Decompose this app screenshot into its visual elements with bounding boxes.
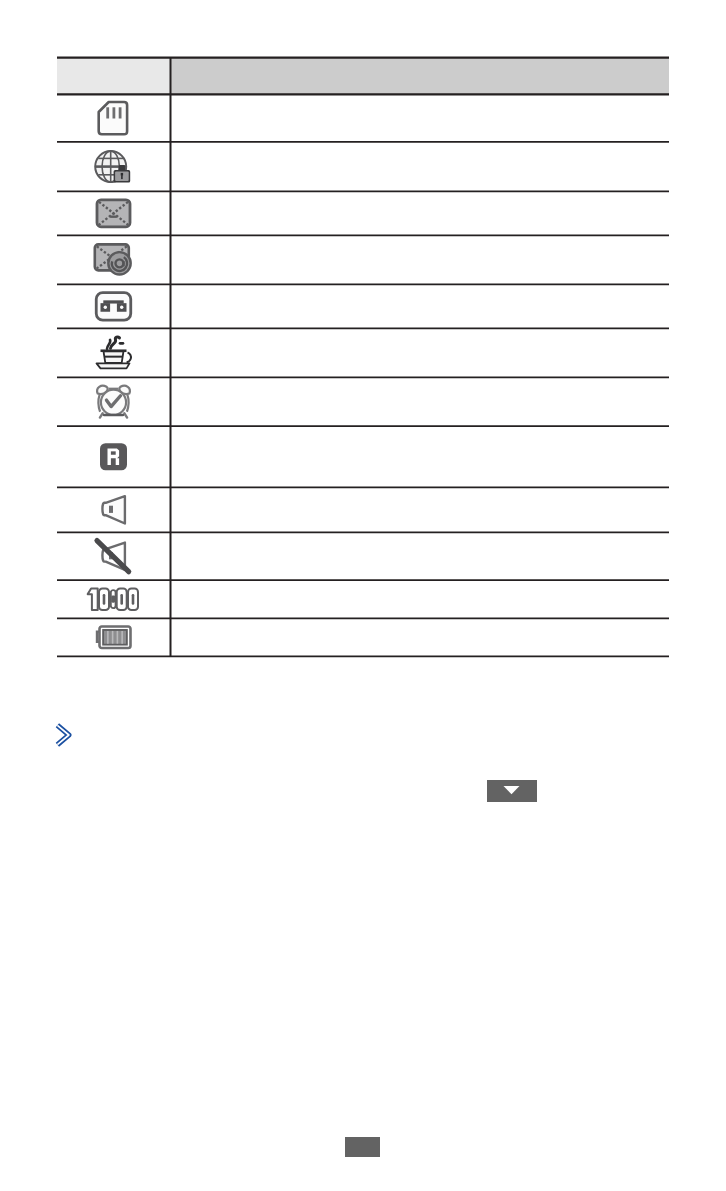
button[interactable]: Alarm activated bbox=[57, 377, 669, 426]
button[interactable]: Call alert set to vibration bbox=[57, 487, 669, 532]
button[interactable]: Java application running bbox=[57, 328, 669, 377]
button[interactable]: New voice mail bbox=[57, 284, 669, 328]
button[interactable]: Roaming (outside of home service area) bbox=[57, 426, 669, 487]
button[interactable]: Current time bbox=[57, 580, 669, 618]
button[interactable]: New text message bbox=[57, 191, 669, 235]
button[interactable]: Silent mode activated bbox=[57, 532, 669, 580]
button[interactable]: SIM card inserted bbox=[57, 94, 669, 141]
button[interactable]: Icon and meaning bbox=[57, 58, 669, 95]
button[interactable]: Expand bbox=[487, 780, 537, 802]
button[interactable]: Section marker bbox=[56, 724, 70, 746]
button[interactable]: New e-mail message bbox=[57, 235, 669, 284]
button[interactable]: Battery power level bbox=[57, 618, 669, 656]
button[interactable]: Secure network connection bbox=[57, 142, 669, 191]
